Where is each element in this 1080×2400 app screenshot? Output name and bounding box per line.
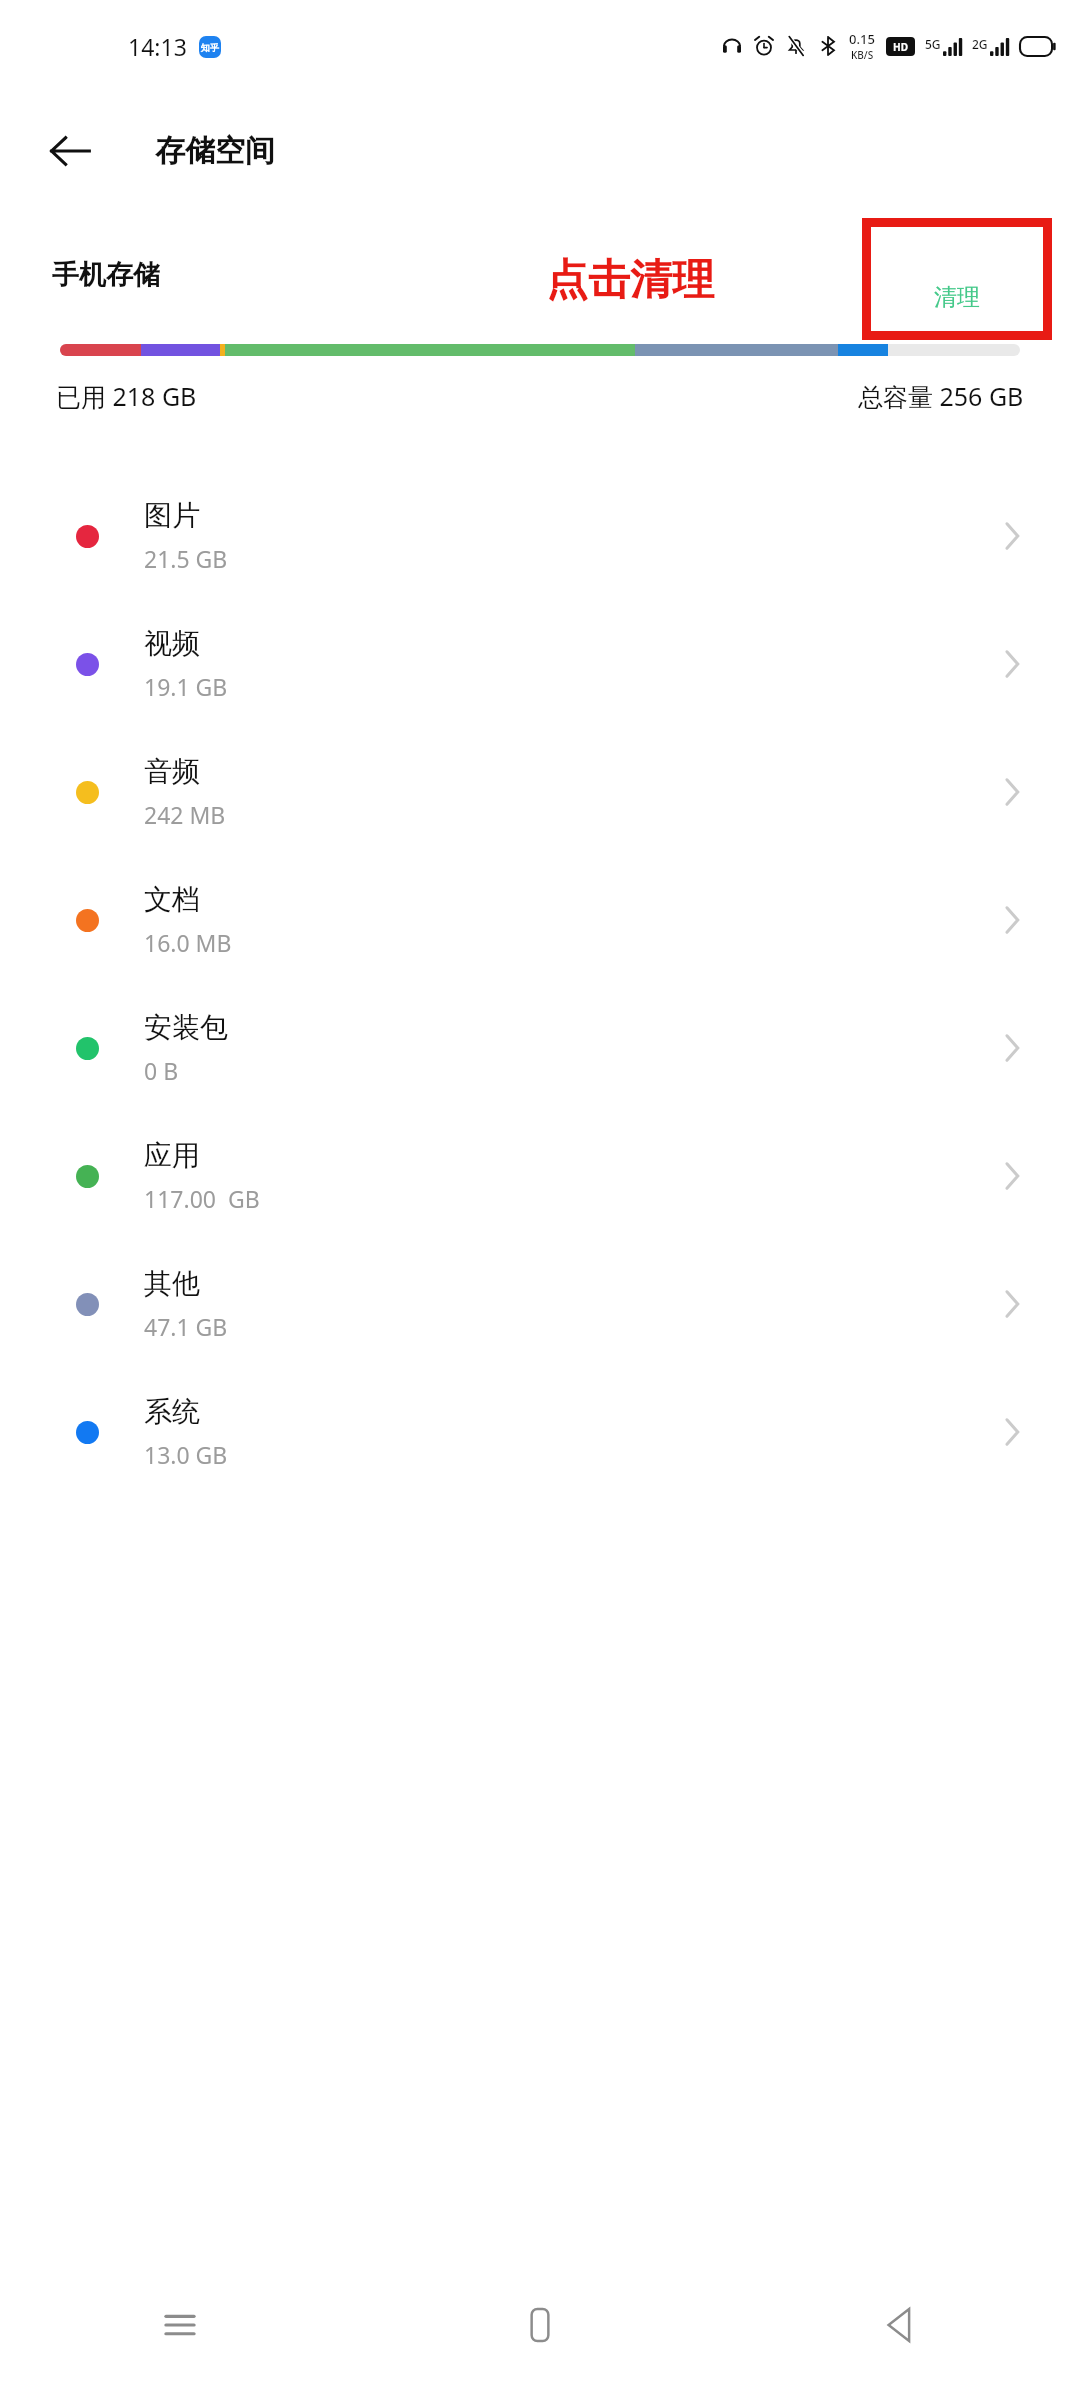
button[interactable]: 安装包: [0, 984, 1080, 1112]
staticText: 图片: [144, 498, 200, 533]
staticText: 系统: [144, 1394, 200, 1429]
staticText: HD: [893, 40, 908, 54]
staticText: 13.0 GB: [144, 1439, 228, 1470]
staticText: 文档: [144, 882, 200, 917]
staticText: 5G: [925, 36, 941, 52]
button[interactable]: Recent apps: [0, 2250, 360, 2400]
staticText: 117.00 GB: [144, 1183, 260, 1214]
staticText: 安装包: [144, 1010, 228, 1045]
staticText: 清理: [934, 283, 980, 312]
staticText: KB/S: [851, 48, 874, 62]
button[interactable]: Home: [360, 2250, 720, 2400]
button[interactable]: 应用: [0, 1112, 1080, 1240]
staticText: 音频: [144, 754, 200, 789]
staticText: 知乎: [201, 42, 219, 53]
staticText: 2G: [972, 36, 988, 52]
button[interactable]: Back: [28, 109, 112, 193]
staticText: 0 B: [144, 1055, 179, 1086]
staticText: 点击清理: [546, 254, 714, 307]
staticText: 存储空间: [155, 132, 275, 170]
button[interactable]: 图片: [0, 472, 1080, 600]
staticText: 21.5 GB: [144, 543, 228, 574]
staticText: 242 MB: [144, 799, 226, 830]
staticText: 视频: [144, 626, 200, 661]
button[interactable]: 视频: [0, 600, 1080, 728]
staticText: 手机存储: [52, 258, 160, 292]
button[interactable]: 清理: [862, 218, 1052, 340]
staticText: 应用: [144, 1138, 200, 1173]
staticText: 其他: [144, 1266, 200, 1301]
staticText: 47.1 GB: [144, 1311, 228, 1342]
button[interactable]: 其他: [0, 1240, 1080, 1368]
button[interactable]: Back: [720, 2250, 1080, 2400]
staticText: 已用 218 GB: [56, 379, 197, 413]
button[interactable]: 文档: [0, 856, 1080, 984]
staticText: 19.1 GB: [144, 671, 228, 702]
button[interactable]: 音频: [0, 728, 1080, 856]
button[interactable]: 系统: [0, 1368, 1080, 1496]
staticText: 14:13: [128, 31, 187, 62]
staticText: 16.0 MB: [144, 927, 232, 958]
staticText: 0.15: [849, 30, 875, 48]
staticText: 总容量 256 GB: [858, 379, 1024, 413]
